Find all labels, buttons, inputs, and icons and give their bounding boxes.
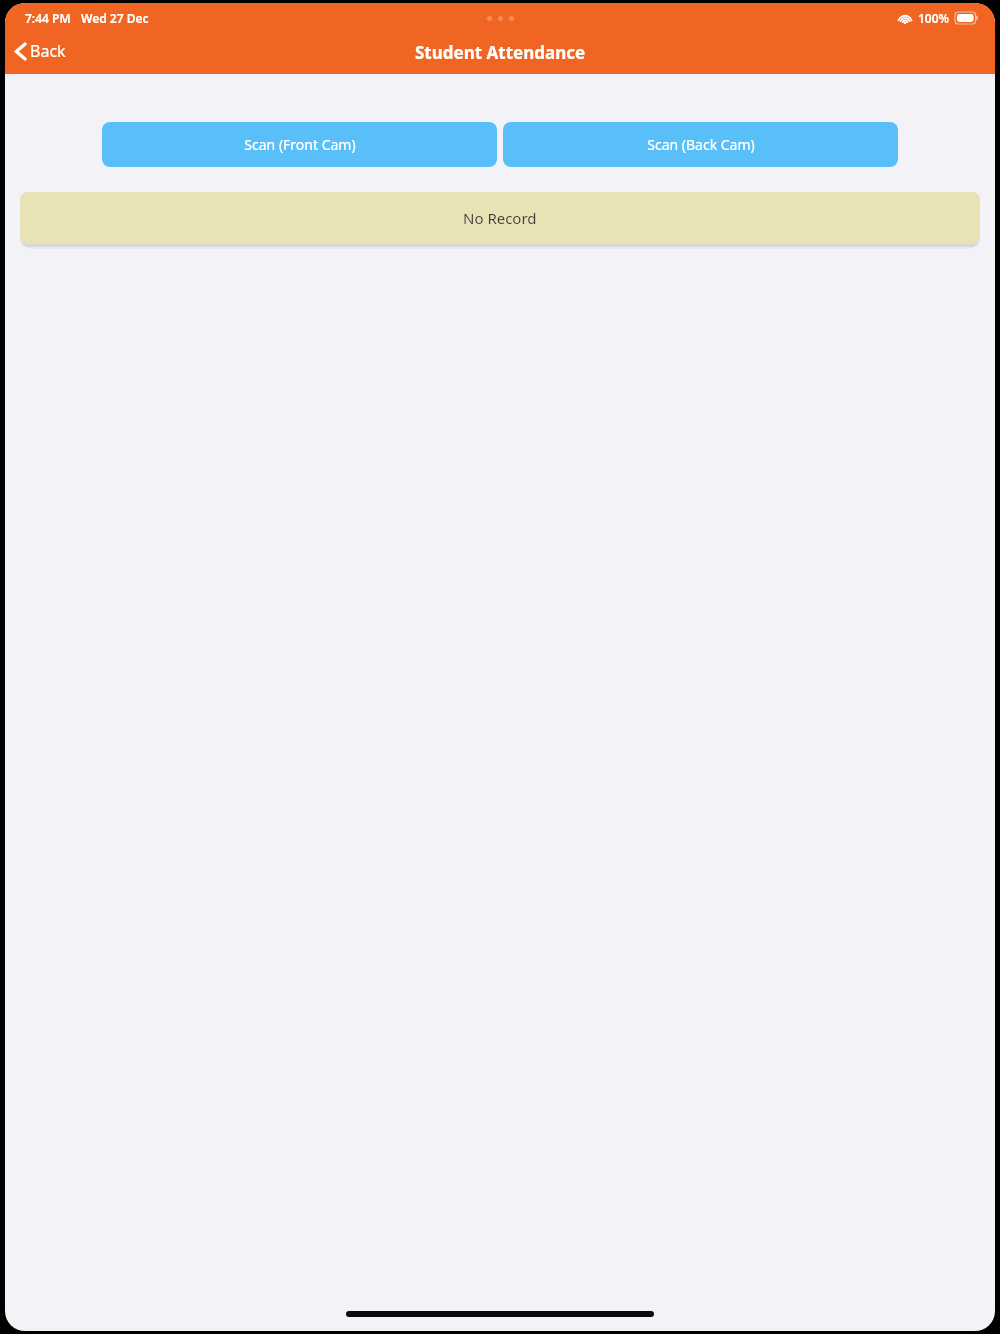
staticText: Student Attendance [415, 41, 586, 64]
staticText: Wed 27 Dec [81, 10, 149, 26]
button[interactable]: No Record [20, 192, 980, 244]
button[interactable]: Back [5, 36, 76, 66]
staticText: Scan (Back Cam) [647, 135, 755, 154]
staticText: Scan (Front Cam) [244, 135, 356, 154]
staticText: No Record [463, 208, 537, 228]
button[interactable]: Scan (Front Cam) [102, 122, 497, 167]
staticText: 7:44 PM [25, 10, 71, 26]
other: Home indicator [5, 1307, 995, 1331]
staticText: 100% [918, 10, 950, 26]
button[interactable]: Scan (Back Cam) [503, 122, 898, 167]
staticText: Back [30, 40, 66, 62]
